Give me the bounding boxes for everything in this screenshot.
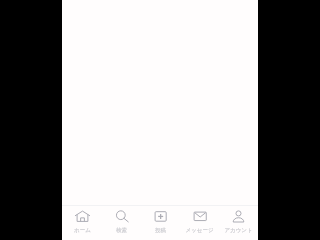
button[interactable]: 投稿	[141, 206, 180, 240]
button[interactable]: アカウント	[219, 206, 258, 240]
button[interactable]: 検索	[102, 206, 141, 240]
staticText: メッセージ	[185, 227, 214, 234]
staticText: アカウント	[224, 227, 253, 234]
staticText: 投稿	[155, 227, 166, 234]
button[interactable]: ホーム	[62, 206, 102, 240]
staticText: 検索	[116, 227, 127, 234]
staticText: ホーム	[74, 227, 91, 234]
button[interactable]: メッセージ	[180, 206, 219, 240]
